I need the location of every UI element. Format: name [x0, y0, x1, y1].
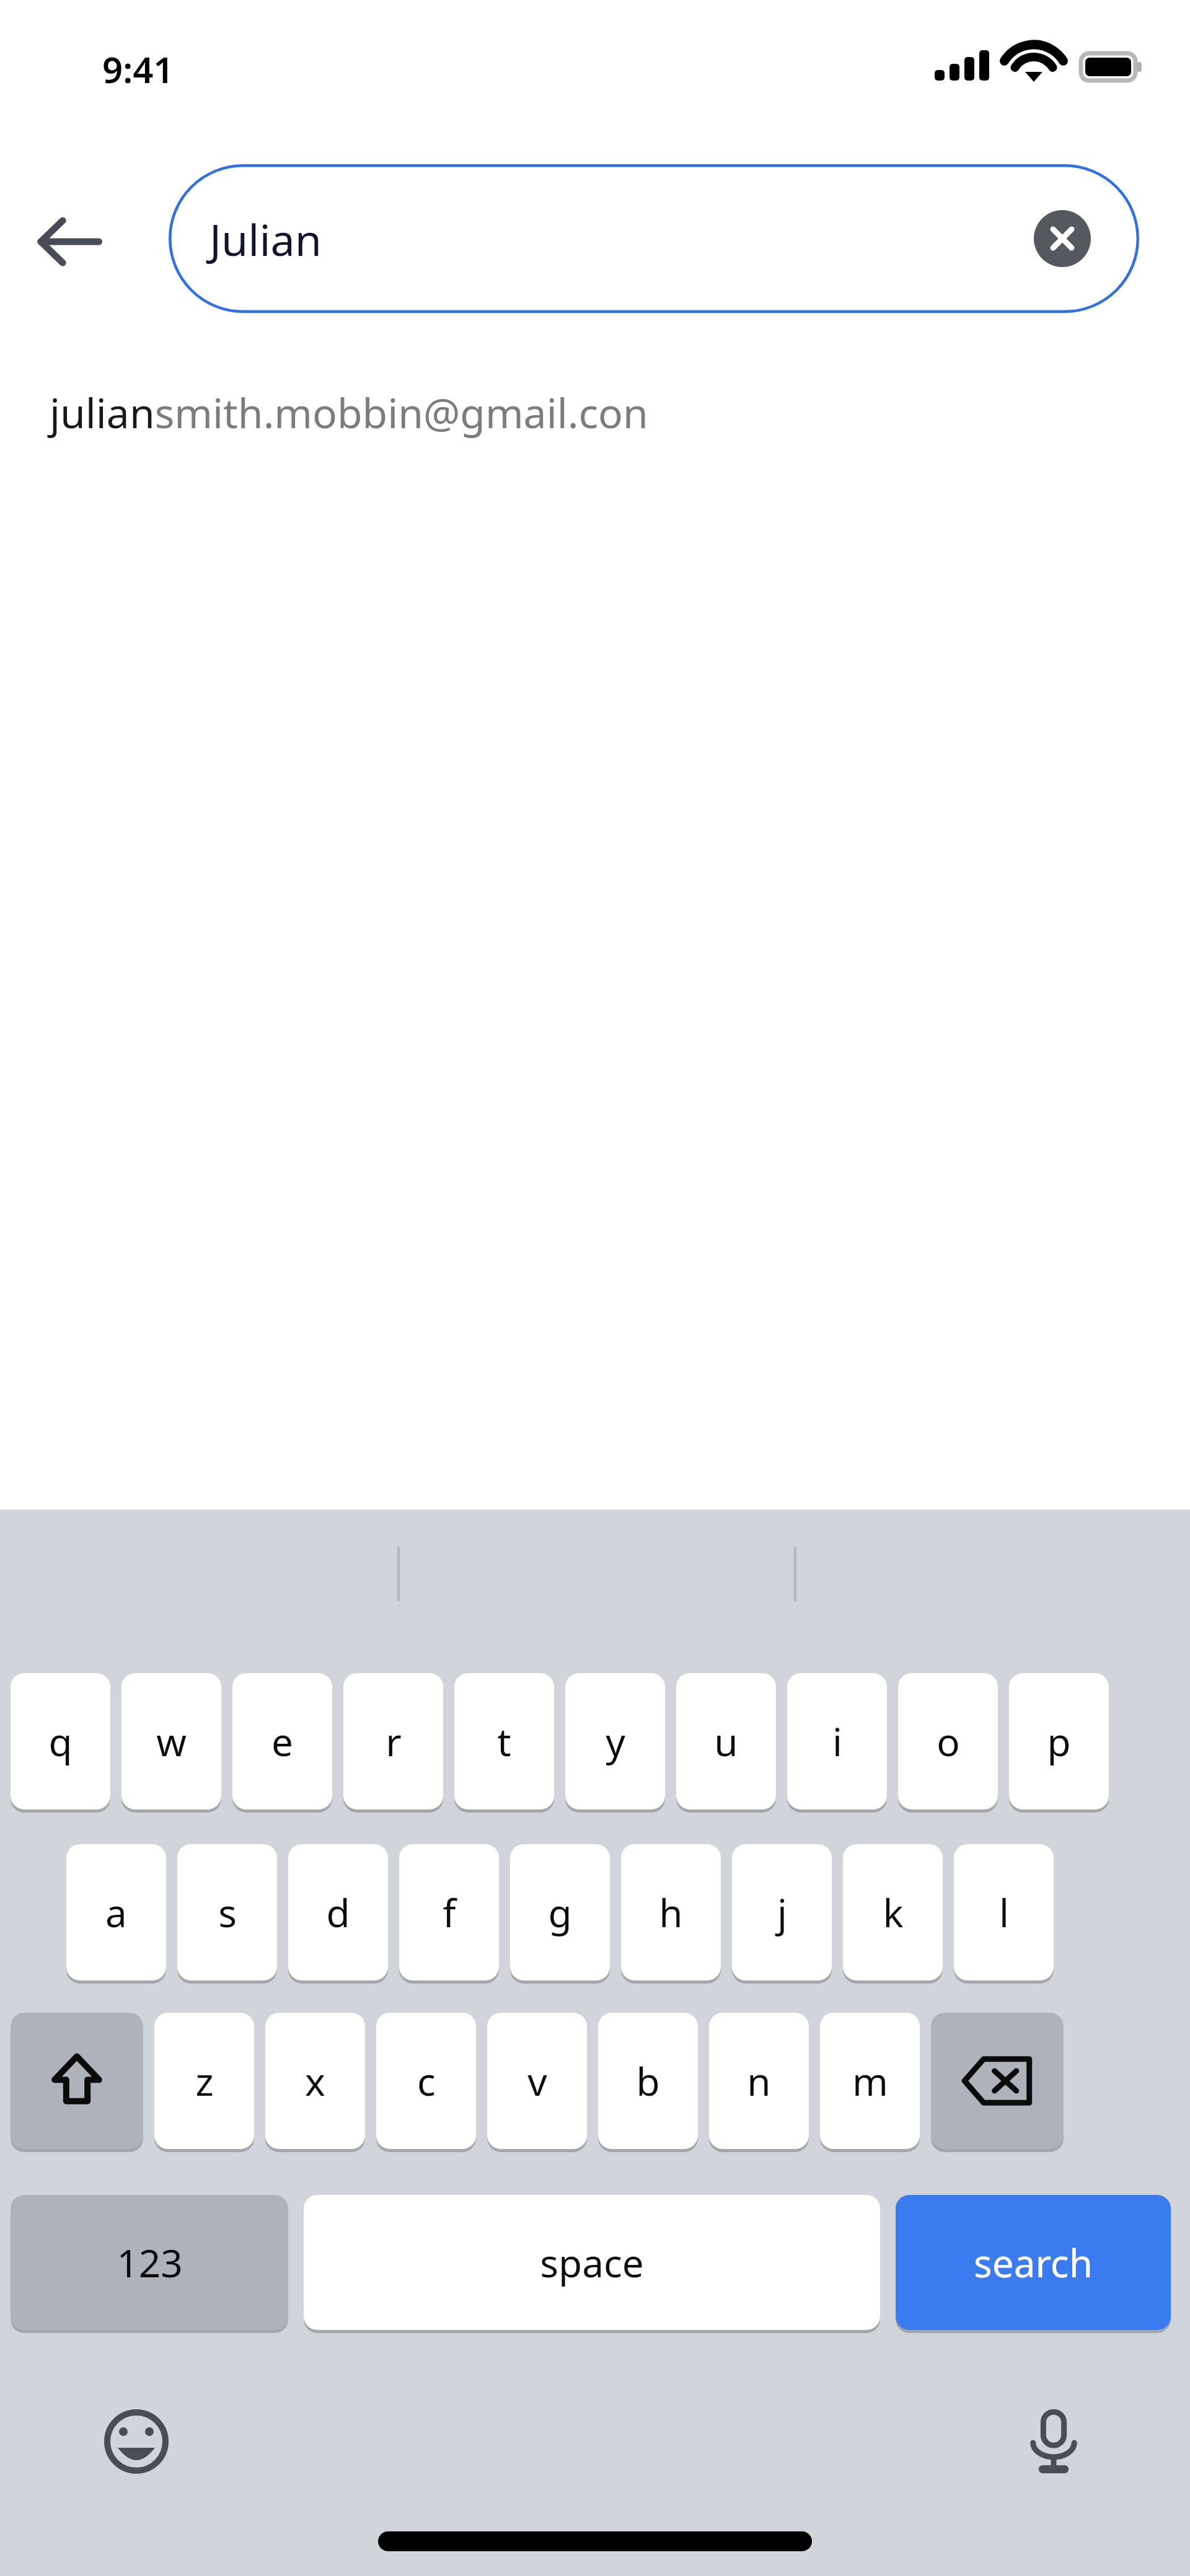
staticText: j: [777, 1886, 787, 1938]
button[interactable]: j: [732, 1844, 832, 1980]
staticText: r: [386, 1715, 402, 1767]
staticText: juliansmith.mobbin@gmail.con: [50, 384, 648, 440]
button[interactable]: b: [598, 2013, 698, 2149]
button[interactable]: z: [154, 2013, 254, 2149]
staticText: search: [974, 2236, 1093, 2288]
button[interactable]: v: [487, 2013, 587, 2149]
staticText: e: [271, 1715, 293, 1767]
button[interactable]: m: [820, 2013, 920, 2149]
button[interactable]: p: [1009, 1673, 1109, 1809]
staticText: b: [636, 2055, 660, 2107]
button[interactable]: Emoji: [87, 2392, 186, 2491]
staticText: f: [443, 1886, 456, 1938]
button[interactable]: n: [709, 2013, 809, 2149]
staticText: Julian: [209, 209, 322, 268]
staticText: z: [195, 2055, 214, 2107]
button[interactable]: t: [454, 1673, 554, 1809]
staticText: t: [497, 1715, 511, 1767]
button[interactable]: o: [898, 1673, 998, 1809]
button[interactable]: l: [954, 1844, 1054, 1980]
button[interactable]: i: [787, 1673, 887, 1809]
button[interactable]: 123: [11, 2195, 288, 2330]
staticText: c: [417, 2055, 436, 2107]
staticText: k: [883, 1886, 904, 1938]
staticText: space: [540, 2236, 644, 2288]
staticText: g: [548, 1886, 572, 1938]
button[interactable]: d: [288, 1844, 388, 1980]
button[interactable]: u: [676, 1673, 776, 1809]
staticText: 123: [117, 2236, 183, 2288]
staticText: s: [218, 1886, 237, 1938]
button[interactable]: Voice input: [1004, 2392, 1103, 2491]
staticText: x: [305, 2055, 325, 2107]
button[interactable]: f: [399, 1844, 499, 1980]
button[interactable]: k: [843, 1844, 943, 1980]
button[interactable]: y: [565, 1673, 665, 1809]
staticText: n: [747, 2055, 771, 2107]
staticText: p: [1047, 1715, 1071, 1767]
button[interactable]: g: [510, 1844, 610, 1980]
button[interactable]: Back: [25, 198, 112, 285]
button[interactable]: h: [621, 1844, 721, 1980]
staticText: y: [606, 1715, 625, 1767]
button[interactable]: s: [177, 1844, 277, 1980]
button[interactable]: x: [265, 2013, 365, 2149]
staticText: u: [714, 1715, 738, 1767]
button[interactable]: Backspace: [931, 2013, 1064, 2149]
staticText: m: [852, 2055, 888, 2107]
staticText: l: [999, 1886, 1009, 1938]
button[interactable]: e: [232, 1673, 332, 1809]
staticText: q: [48, 1715, 73, 1767]
button[interactable]: w: [121, 1673, 221, 1809]
button[interactable]: Julian: [169, 164, 1139, 313]
button[interactable]: q: [11, 1673, 110, 1809]
button[interactable]: a: [66, 1844, 166, 1980]
staticText: w: [156, 1715, 187, 1767]
staticText: d: [326, 1886, 350, 1938]
button[interactable]: r: [343, 1673, 443, 1809]
staticText: i: [832, 1715, 842, 1767]
staticText: h: [659, 1886, 683, 1938]
button[interactable]: juliansmith.mobbin@gmail.con: [0, 366, 1190, 459]
button[interactable]: Shift: [11, 2013, 143, 2149]
button[interactable]: c: [376, 2013, 476, 2149]
staticText: a: [105, 1886, 127, 1938]
staticText: 9:41: [102, 45, 174, 94]
button[interactable]: Clear text: [1034, 210, 1091, 267]
staticText: o: [937, 1715, 960, 1767]
staticText: v: [527, 2055, 547, 2107]
button[interactable]: search: [896, 2195, 1171, 2330]
button[interactable]: space: [304, 2195, 880, 2330]
